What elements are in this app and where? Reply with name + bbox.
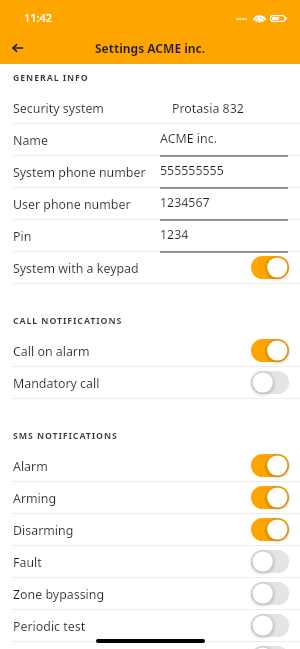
button[interactable]: Alarm: [0, 450, 300, 482]
button[interactable]: System with a keypad on: [251, 256, 289, 279]
button[interactable]: Periodic test off: [251, 614, 289, 637]
staticText: System phone number: [13, 164, 146, 181]
button[interactable]: Mandatory call off: [251, 371, 289, 394]
button[interactable]: User phone number: [0, 188, 300, 220]
button[interactable]: Fault off: [251, 550, 289, 573]
staticText: System with a keypad: [13, 260, 139, 277]
button[interactable]: Tamper: [0, 642, 300, 649]
staticText: Disarming: [13, 522, 74, 539]
staticText: Alarm: [13, 458, 48, 475]
staticText: Mandatory call: [13, 375, 100, 392]
button[interactable]: System with a keypad: [0, 252, 300, 284]
button[interactable]: Fault: [0, 546, 300, 578]
staticText: Name: [13, 132, 48, 149]
staticText: 1234567: [160, 194, 210, 211]
staticText: Protasia 832: [172, 100, 244, 117]
staticText: Settings ACME inc.: [95, 40, 206, 56]
staticText: Fault: [13, 554, 42, 571]
staticText: Call on alarm: [13, 343, 90, 360]
staticText: SMS NOTIFICATIONS: [13, 430, 118, 442]
button[interactable]: Alarm on: [251, 454, 289, 477]
staticText: 1234: [160, 226, 189, 243]
staticText: Periodic test: [13, 618, 86, 635]
button[interactable]: Disarming on: [251, 518, 289, 541]
button[interactable]: Zone bypassing: [0, 578, 300, 610]
button[interactable]: Call on alarm on: [251, 339, 289, 362]
button[interactable]: Pin: [0, 220, 300, 252]
staticText: CALL NOTIFICATIONS: [13, 315, 123, 327]
button[interactable]: Back: [0, 34, 34, 62]
staticText: User phone number: [13, 196, 131, 213]
staticText: Pin: [13, 228, 32, 245]
button[interactable]: Mandatory call: [0, 367, 300, 399]
button[interactable]: Arming on: [251, 486, 289, 509]
staticText: Zone bypassing: [13, 586, 105, 603]
staticText: Security system: [13, 100, 104, 117]
staticText: Arming: [13, 490, 57, 507]
staticText: 555555555: [160, 162, 224, 179]
staticText: ACME inc.: [160, 130, 217, 147]
button[interactable]: Arming: [0, 482, 300, 514]
staticText: 11:42: [24, 10, 53, 25]
button[interactable]: Name: [0, 124, 300, 156]
button[interactable]: Zone bypassing off: [251, 582, 289, 605]
button[interactable]: System phone number: [0, 156, 300, 188]
button[interactable]: Call on alarm: [0, 335, 300, 367]
button[interactable]: Disarming: [0, 514, 300, 546]
staticText: GENERAL INFO: [13, 72, 89, 84]
button[interactable]: Tamper off: [251, 646, 289, 649]
button[interactable]: Periodic test: [0, 610, 300, 642]
button[interactable]: Security system: [0, 92, 300, 124]
